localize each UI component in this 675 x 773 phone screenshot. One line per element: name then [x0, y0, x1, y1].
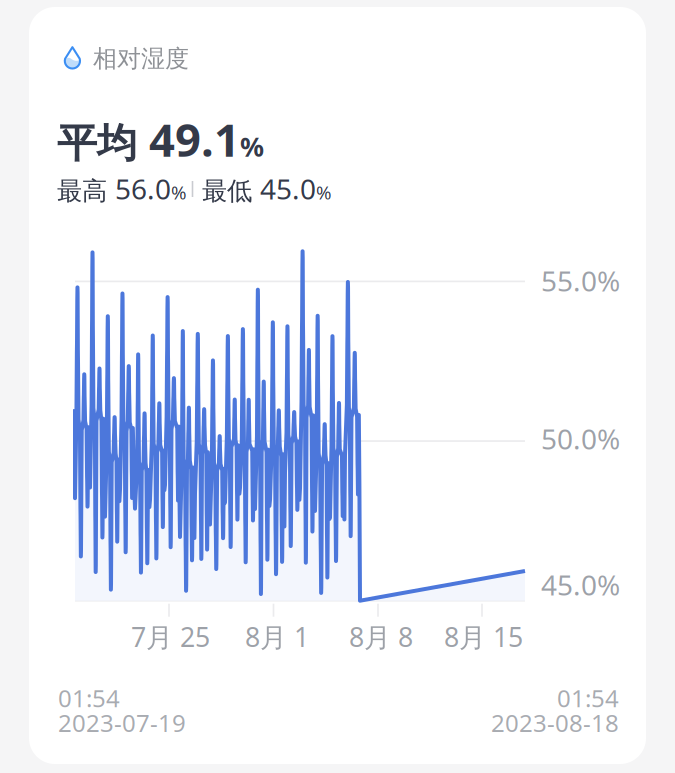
staticText: 55.0% [541, 262, 620, 299]
staticText: 平均 [57, 119, 149, 168]
staticText: 相对湿度 [93, 44, 189, 73]
staticText: 8月 1 [245, 619, 309, 654]
staticText: 01:54 [557, 682, 619, 714]
staticText: 7月 25 [131, 619, 210, 654]
staticText: 最低 [202, 175, 260, 207]
staticText: 01:54 [58, 682, 120, 714]
staticText: 50.0% [541, 420, 620, 457]
staticText: 最高 [57, 175, 115, 207]
staticText: 56.0 [115, 170, 171, 207]
staticText: 8月 15 [444, 619, 523, 654]
staticText: 2023-07-19 [58, 707, 186, 739]
staticText: 49.1 [149, 109, 240, 169]
staticText: 45.0% [541, 566, 620, 603]
staticText: 8月 8 [349, 619, 413, 654]
staticText: % [240, 129, 264, 164]
staticText: % [171, 180, 187, 205]
staticText: 45.0 [260, 170, 316, 207]
staticText: % [316, 180, 332, 205]
staticText: 2023-08-18 [491, 707, 619, 739]
